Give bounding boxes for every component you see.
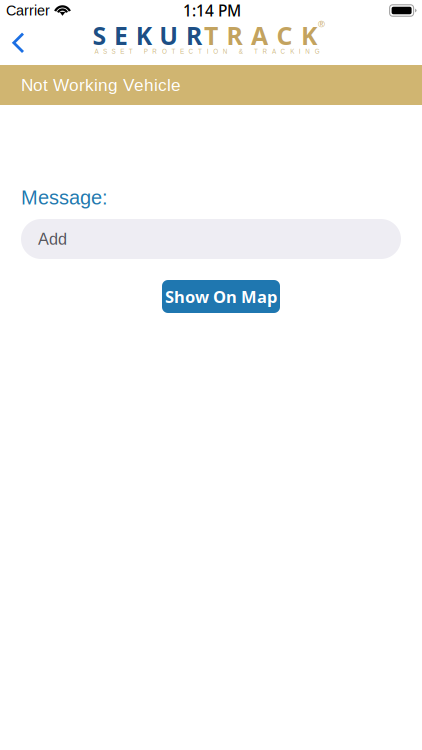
staticText: E bbox=[120, 48, 124, 55]
staticText: 1:14 PM bbox=[183, 0, 241, 21]
staticText: C bbox=[277, 18, 293, 52]
staticText: S bbox=[112, 48, 116, 55]
staticText: Add bbox=[38, 230, 67, 248]
staticText: T bbox=[171, 48, 175, 55]
staticText: R bbox=[227, 18, 243, 52]
button[interactable]: Show On Map bbox=[162, 280, 280, 313]
staticText: K bbox=[290, 48, 294, 55]
staticText: & bbox=[239, 48, 243, 55]
staticText: R bbox=[152, 48, 157, 55]
staticText: K bbox=[136, 18, 152, 52]
staticText: T bbox=[254, 48, 258, 55]
staticText: T bbox=[129, 48, 133, 55]
staticText: A bbox=[251, 18, 268, 52]
staticText: K bbox=[301, 18, 317, 52]
staticText: P bbox=[144, 48, 148, 55]
staticText: E bbox=[180, 48, 184, 55]
staticText: A bbox=[272, 48, 276, 55]
staticText: Message: bbox=[21, 186, 108, 209]
staticText: ® bbox=[318, 19, 325, 29]
staticText: G bbox=[315, 48, 320, 55]
staticText: O bbox=[162, 48, 167, 55]
staticText: C bbox=[188, 48, 193, 55]
staticText: E bbox=[114, 18, 128, 52]
staticText: A bbox=[94, 48, 98, 55]
staticText: T bbox=[198, 48, 202, 55]
staticText: U bbox=[159, 18, 178, 52]
staticText: T bbox=[204, 18, 218, 52]
staticText: C bbox=[281, 48, 286, 55]
staticText: O bbox=[213, 48, 218, 55]
button[interactable]: Back bbox=[0, 22, 39, 64]
staticText: I bbox=[207, 48, 209, 55]
staticText: N bbox=[223, 48, 228, 55]
staticText: Carrier bbox=[6, 2, 50, 19]
staticText: N bbox=[305, 48, 310, 55]
staticText: S bbox=[92, 18, 106, 52]
staticText: I bbox=[299, 48, 301, 55]
staticText: S bbox=[103, 48, 107, 55]
staticText: R bbox=[262, 48, 267, 55]
staticText: Show On Map bbox=[165, 285, 277, 308]
staticText: R bbox=[186, 18, 202, 52]
staticText: Not Working Vehicle bbox=[21, 75, 181, 95]
